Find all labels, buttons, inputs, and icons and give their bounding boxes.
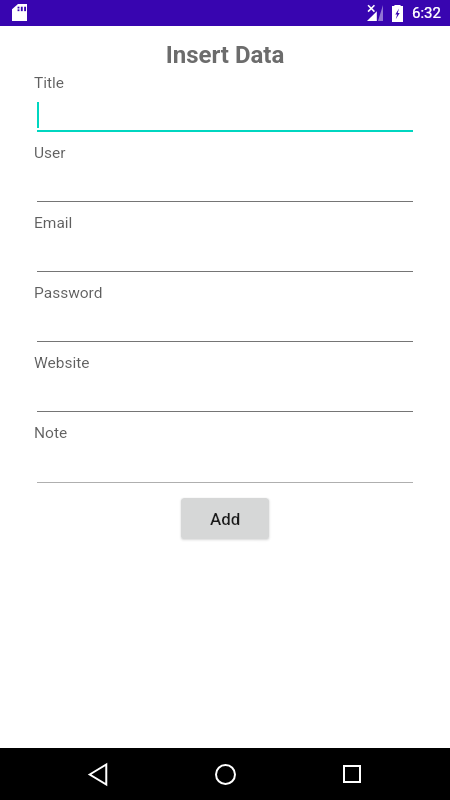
button[interactable]: User: [34, 140, 413, 205]
button[interactable]: Add: [181, 498, 269, 539]
staticText: 6:32: [412, 4, 441, 22]
button[interactable]: Title: [34, 70, 413, 135]
staticText: Note: [34, 424, 68, 442]
staticText: Insert Data: [0, 41, 450, 69]
staticText: Add: [210, 509, 241, 529]
staticText: Password: [34, 284, 103, 302]
button[interactable]: Back: [70, 748, 126, 800]
button[interactable]: Website: [34, 350, 413, 415]
button[interactable]: Email: [34, 210, 413, 275]
staticText: Title: [34, 74, 65, 92]
button[interactable]: Note: [34, 420, 413, 486]
staticText: Email: [34, 214, 73, 232]
button[interactable]: Home: [197, 748, 253, 800]
staticText: Website: [34, 354, 90, 372]
button[interactable]: Recents: [324, 748, 380, 800]
staticText: User: [34, 144, 66, 162]
button[interactable]: Password: [34, 280, 413, 345]
